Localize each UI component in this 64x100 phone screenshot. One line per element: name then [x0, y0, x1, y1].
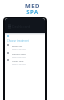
staticText: from 249 USD [12, 56, 26, 58]
staticText: Dashboard [12, 24, 31, 29]
button[interactable]: Botox lift [5, 44, 45, 50]
button[interactable]: Menu [7, 24, 11, 28]
staticText: from 149 USD [12, 63, 26, 65]
staticText: Laser care [12, 59, 24, 62]
staticText: Dermal filler [12, 52, 26, 55]
button[interactable]: Dermal filler [5, 52, 45, 58]
button[interactable]: Laser care [5, 59, 45, 65]
staticText: from 199 USD [12, 48, 26, 50]
staticText: Choose treatment [7, 39, 29, 43]
staticText: SPA [26, 8, 39, 16]
staticText: MED [25, 2, 40, 10]
staticText: Botox lift [12, 44, 23, 47]
